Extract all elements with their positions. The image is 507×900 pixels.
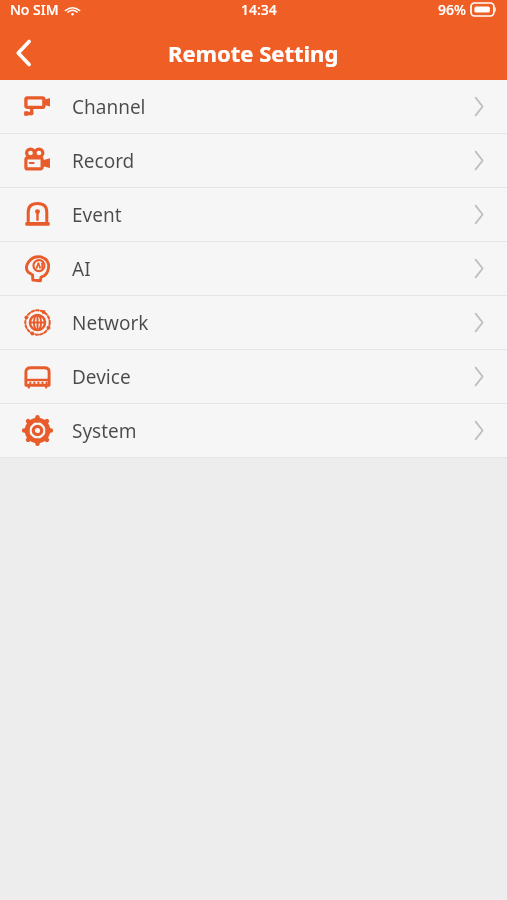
button[interactable]: Record [0, 134, 507, 187]
staticText: Record [72, 148, 135, 174]
button[interactable]: Device [0, 350, 507, 403]
staticText: Network [72, 310, 149, 336]
staticText: System [72, 418, 137, 444]
button[interactable]: System [0, 404, 507, 457]
button[interactable]: Back [0, 29, 48, 77]
staticText: Event [72, 202, 122, 228]
staticText: 96% [438, 0, 466, 19]
button[interactable]: Channel [0, 80, 507, 133]
button[interactable]: Network [0, 296, 507, 349]
staticText: AI [72, 256, 91, 282]
staticText: Remote Setting [168, 38, 339, 68]
staticText: No SIM [10, 0, 59, 19]
staticText: Channel [72, 94, 146, 120]
button[interactable]: AI [0, 242, 507, 295]
staticText: Device [72, 364, 131, 390]
staticText: 14:34 [241, 0, 277, 19]
button[interactable]: Event [0, 188, 507, 241]
